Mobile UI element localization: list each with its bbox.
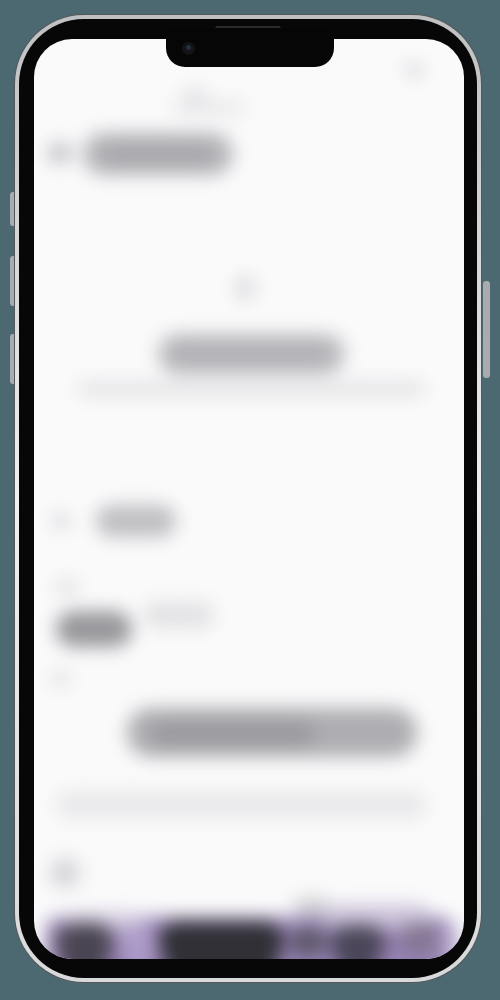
button[interactable] [398,923,442,955]
button[interactable] [330,925,386,959]
button[interactable] [290,927,326,957]
button[interactable] [158,921,284,959]
button[interactable] [56,923,114,959]
